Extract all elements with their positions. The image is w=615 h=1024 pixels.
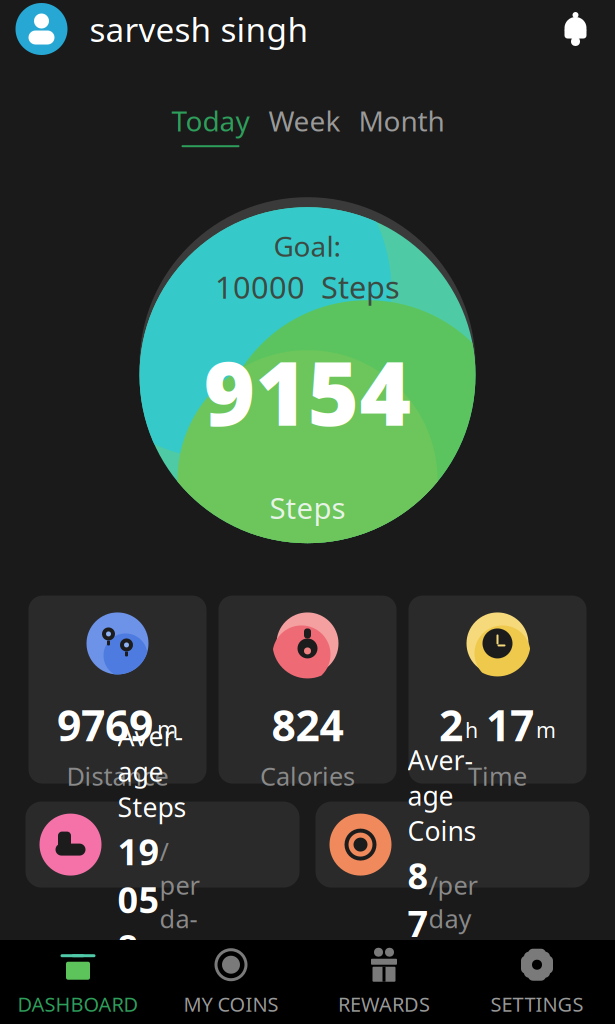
staticText: REWARDS bbox=[338, 991, 430, 1017]
button[interactable]: DASHBOARD bbox=[1, 940, 154, 1024]
button[interactable]: 9769 bbox=[28, 596, 206, 784]
button[interactable]: Notifications bbox=[553, 7, 597, 51]
staticText: sarvesh singh bbox=[89, 7, 308, 51]
button[interactable]: Profile bbox=[15, 3, 67, 55]
staticText: 9769 bbox=[57, 696, 153, 753]
staticText: Week bbox=[268, 102, 340, 139]
staticText: m bbox=[536, 716, 556, 744]
staticText: Today bbox=[171, 102, 249, 139]
staticText: 9154 bbox=[203, 333, 411, 450]
button[interactable]: Average Coins bbox=[315, 802, 589, 888]
button[interactable]: Week bbox=[257, 102, 351, 147]
button[interactable]: Average Steps bbox=[25, 802, 299, 888]
staticText: 824 bbox=[271, 696, 343, 753]
staticText: Goal: bbox=[273, 227, 341, 264]
button[interactable]: Today bbox=[163, 102, 257, 147]
button[interactable]: MY COINS bbox=[154, 940, 307, 1024]
button[interactable]: SETTINGS bbox=[460, 940, 613, 1024]
staticText: /per day bbox=[159, 834, 199, 969]
staticText: SETTINGS bbox=[490, 991, 583, 1017]
staticText: m bbox=[157, 714, 178, 744]
staticText: Month bbox=[358, 102, 444, 139]
staticText: MY COINS bbox=[183, 991, 278, 1017]
staticText: Steps bbox=[269, 488, 345, 527]
button[interactable]: Month bbox=[351, 102, 451, 147]
staticText: Time bbox=[468, 759, 527, 793]
staticText: 2 bbox=[439, 696, 463, 753]
button[interactable]: REWARDS bbox=[307, 940, 460, 1024]
staticText: h bbox=[465, 716, 478, 744]
staticText: 10000 Steps bbox=[215, 266, 400, 307]
staticText: Distance bbox=[66, 759, 168, 793]
staticText: 19058 bbox=[117, 827, 159, 971]
button[interactable]: 2 bbox=[408, 596, 586, 784]
staticText: Calories bbox=[260, 759, 355, 793]
staticText: 87 bbox=[407, 851, 428, 947]
button[interactable]: 824 bbox=[218, 596, 396, 784]
staticText: Average Coins bbox=[407, 742, 476, 848]
staticText: 17 bbox=[486, 696, 534, 753]
staticText: /per day bbox=[428, 868, 477, 935]
staticText: DASHBOARD bbox=[17, 991, 138, 1017]
staticText: Average Steps bbox=[117, 718, 186, 824]
